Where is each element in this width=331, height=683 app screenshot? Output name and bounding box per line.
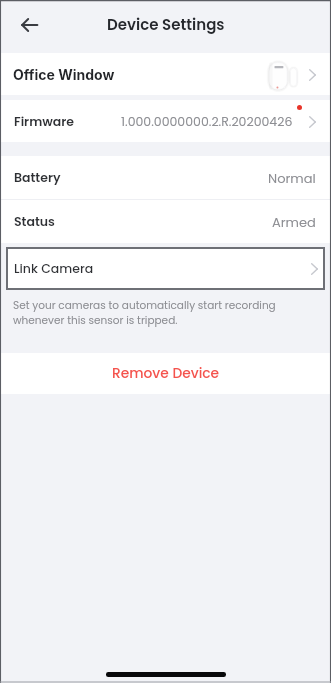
staticText: Armed: [272, 213, 316, 231]
staticText: Status: [14, 213, 55, 230]
staticText: Firmware: [14, 113, 75, 130]
button[interactable]: Battery: [0, 156, 331, 199]
button[interactable]: Firmware: [0, 100, 331, 142]
staticText: Office Window: [13, 66, 115, 83]
staticText: Link Camera: [14, 260, 94, 277]
button[interactable]: Office Window: [0, 53, 331, 95]
button[interactable]: Remove Device: [0, 353, 331, 394]
staticText: Remove Device: [112, 364, 220, 383]
staticText: Normal: [268, 169, 316, 187]
staticText: Battery: [14, 169, 61, 186]
button[interactable]: Link Camera: [6, 247, 325, 290]
button[interactable]: Back: [10, 6, 48, 44]
staticText: Device Settings: [107, 14, 225, 35]
staticText: 1.000.0000000.2.R.20200426: [121, 113, 293, 130]
button[interactable]: Status: [0, 200, 331, 243]
staticText: Set your cameras to automatically start …: [13, 298, 276, 328]
